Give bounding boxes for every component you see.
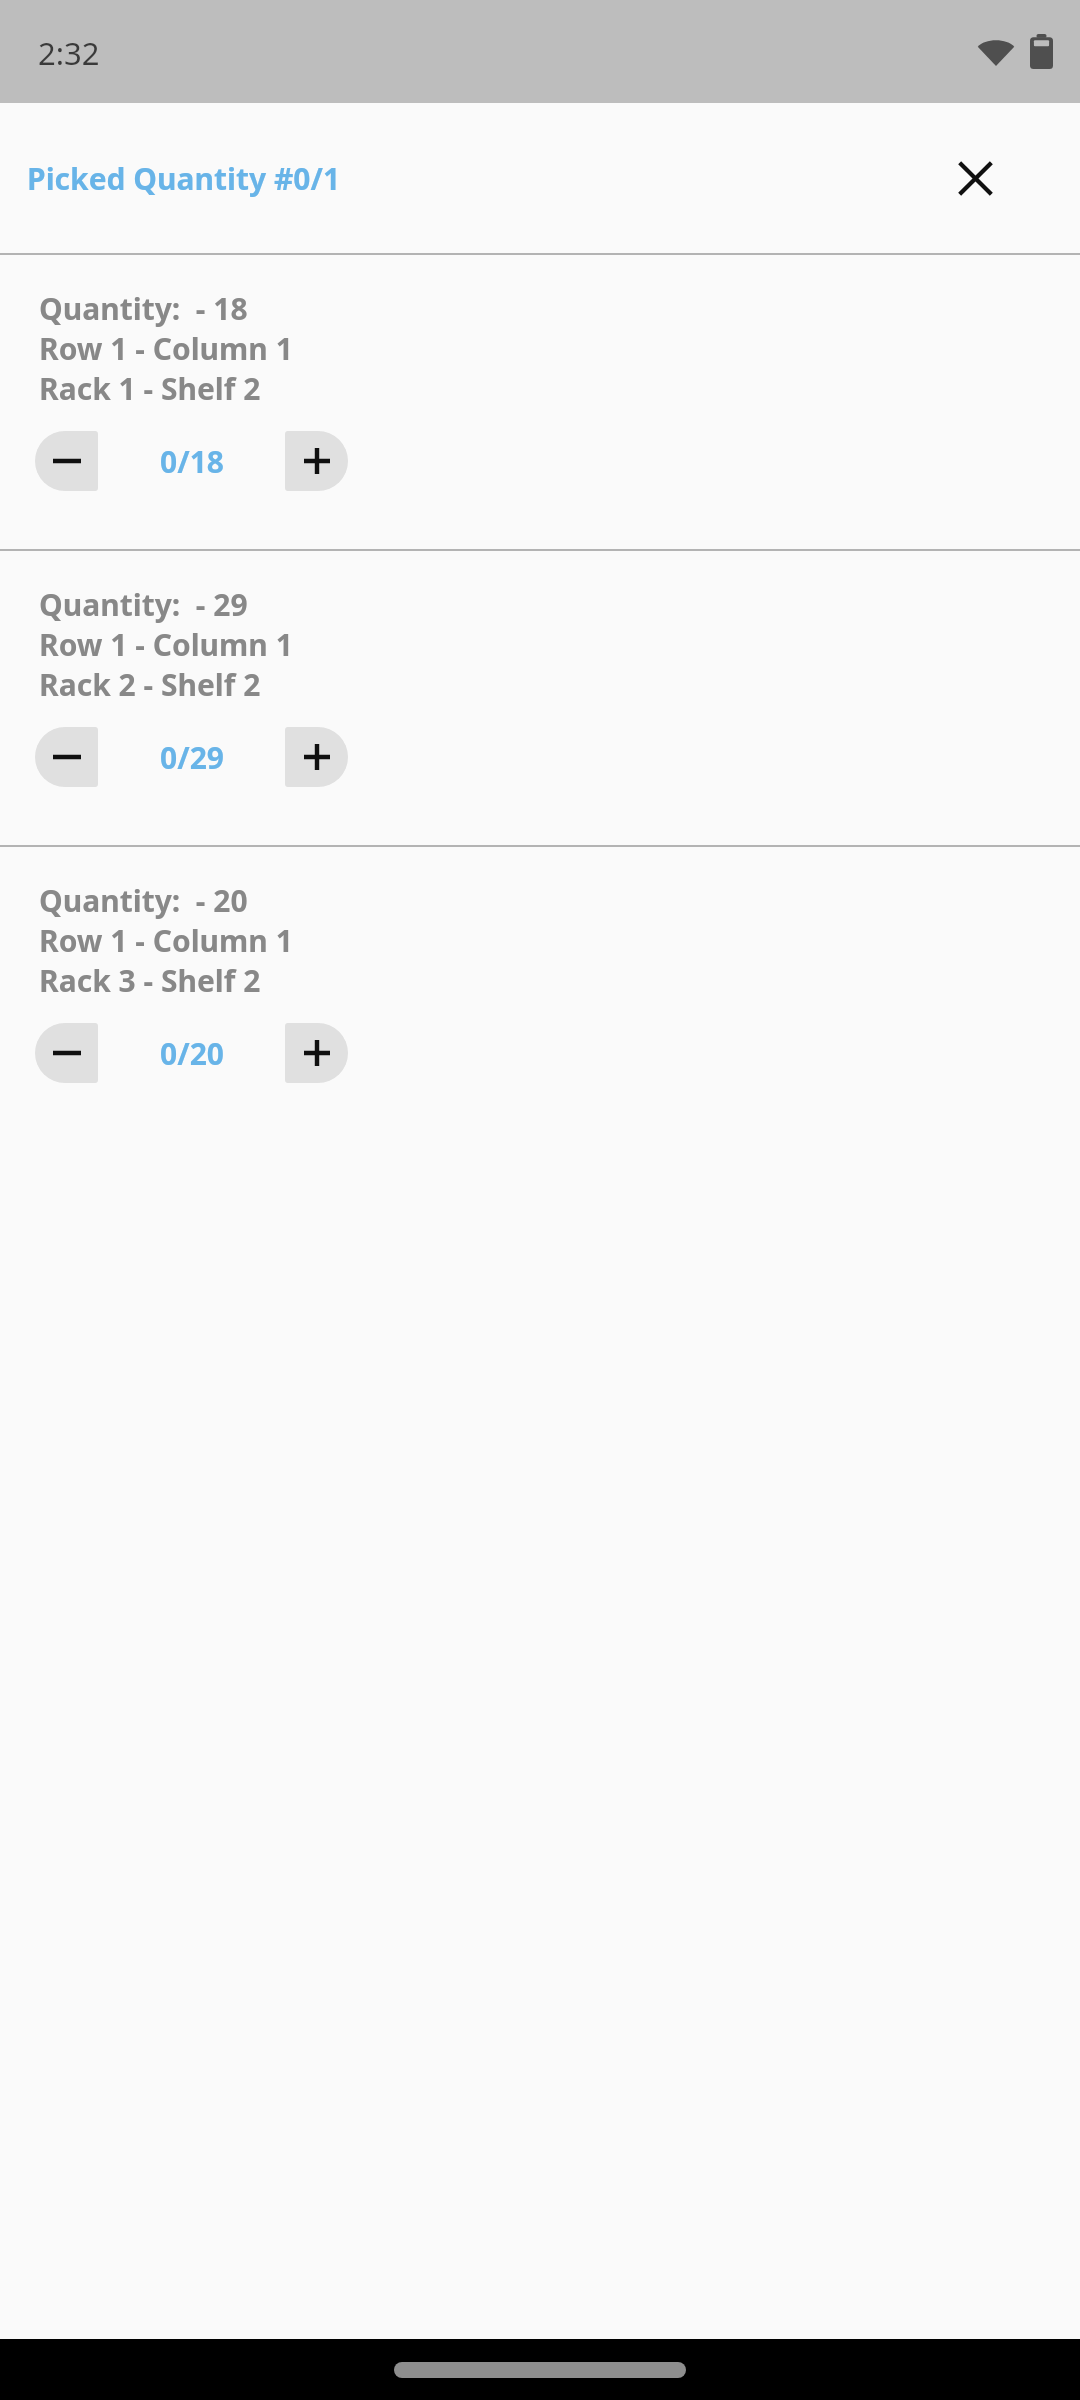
button[interactable]: Increase quantity <box>285 431 348 491</box>
button[interactable]: Quantity: - 20 <box>0 847 1080 1141</box>
staticText: 0/20 <box>160 1033 224 1074</box>
button[interactable]: Decrease quantity <box>35 1023 98 1083</box>
staticText: Rack 1 - Shelf 2 <box>39 368 261 408</box>
button[interactable]: Close <box>940 143 1010 213</box>
button[interactable]: Quantity: - 29 <box>0 551 1080 845</box>
button[interactable]: Decrease quantity <box>35 727 98 787</box>
staticText: Row 1 - Column 1 <box>39 328 293 368</box>
staticText: Quantity: - 20 <box>39 880 248 920</box>
staticText: Rack 3 - Shelf 2 <box>39 960 261 1000</box>
button[interactable]: Increase quantity <box>285 727 348 787</box>
staticText: Quantity: - 18 <box>39 288 248 328</box>
staticText: Rack 2 - Shelf 2 <box>39 664 261 704</box>
button[interactable]: Increase quantity <box>285 1023 348 1083</box>
staticText: 0/18 <box>160 441 224 482</box>
staticText: 0/29 <box>160 737 224 778</box>
staticText: Quantity: - 29 <box>39 584 248 624</box>
staticText: Picked Quantity #0/1 <box>27 158 341 199</box>
staticText: Row 1 - Column 1 <box>39 920 293 960</box>
button[interactable]: Decrease quantity <box>35 431 98 491</box>
staticText: Row 1 - Column 1 <box>39 624 293 664</box>
button[interactable]: Quantity: - 18 <box>0 255 1080 549</box>
staticText: 2:32 <box>38 32 100 74</box>
